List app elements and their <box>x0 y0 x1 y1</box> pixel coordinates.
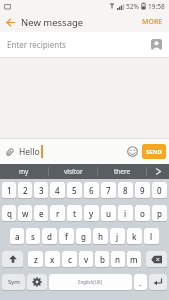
staticText: c <box>68 254 72 265</box>
button[interactable]: c <box>62 251 77 268</box>
staticText: 3 <box>39 185 44 196</box>
button[interactable]: 5 <box>67 182 82 199</box>
staticText: b <box>100 254 105 265</box>
staticText: i <box>124 208 127 219</box>
button[interactable] <box>5 147 15 157</box>
button[interactable]: d <box>42 228 57 245</box>
staticText: m <box>130 254 138 265</box>
staticText: SEND <box>146 148 162 156</box>
staticText: 7 <box>106 185 111 196</box>
button[interactable]: u <box>101 205 116 222</box>
staticText: g <box>81 231 86 242</box>
button[interactable]: f <box>59 228 74 245</box>
staticText: . <box>139 276 142 288</box>
staticText: o <box>140 208 145 219</box>
staticText: x <box>50 254 55 265</box>
button[interactable]: English(UK) <box>49 274 132 291</box>
button[interactable]: . <box>134 274 147 291</box>
staticText: 5 <box>72 185 77 196</box>
button[interactable]: 2 <box>18 182 32 199</box>
button[interactable]: visitor <box>49 164 97 179</box>
button[interactable]: n <box>111 251 125 268</box>
staticText: Hello <box>19 146 40 158</box>
button[interactable]: q <box>2 205 16 222</box>
staticText: 2 <box>23 185 28 196</box>
staticText: 19:58 <box>148 2 165 11</box>
button[interactable]: t <box>67 205 82 222</box>
button[interactable]: m <box>127 251 141 268</box>
button[interactable] <box>149 274 167 291</box>
button[interactable]: k <box>127 228 142 245</box>
staticText: 6 <box>89 185 94 196</box>
staticText: q <box>7 208 12 219</box>
button[interactable] <box>6 18 15 27</box>
button[interactable]: 6 <box>84 182 99 199</box>
button[interactable]: y <box>84 205 99 222</box>
staticText: Sym <box>8 278 20 286</box>
button[interactable]: h <box>93 228 108 245</box>
button[interactable] <box>147 164 169 179</box>
staticText: my <box>19 167 29 176</box>
staticText: 52% <box>126 2 139 11</box>
staticText: z <box>34 254 38 265</box>
button[interactable]: my <box>0 164 48 179</box>
staticText: d <box>47 231 52 242</box>
button[interactable]: there <box>98 164 146 179</box>
button[interactable]: 4 <box>50 182 65 199</box>
staticText: k <box>132 231 137 242</box>
button[interactable]: 0 <box>152 182 167 199</box>
button[interactable]: a <box>10 228 24 245</box>
staticText: there <box>114 167 131 176</box>
button[interactable]: j <box>110 228 125 245</box>
button[interactable]: i <box>118 205 133 222</box>
staticText: y <box>89 208 94 219</box>
staticText: f <box>65 231 68 242</box>
staticText: h <box>98 231 104 242</box>
button[interactable]: 8 <box>118 182 133 199</box>
staticText: 4 <box>55 185 60 196</box>
button[interactable] <box>2 251 23 268</box>
button[interactable]: 9 <box>135 182 150 199</box>
button[interactable]: b <box>95 251 109 268</box>
button[interactable]: x <box>45 251 60 268</box>
staticText: 9 <box>140 185 145 196</box>
staticText: l <box>150 231 153 242</box>
staticText: e <box>39 208 44 219</box>
button[interactable] <box>151 39 162 50</box>
button[interactable]: MORE <box>142 17 163 27</box>
staticText: a <box>15 231 20 242</box>
button[interactable]: p <box>152 205 167 222</box>
button[interactable] <box>27 274 47 291</box>
staticText: 8 <box>123 185 128 196</box>
staticText: r <box>56 208 60 219</box>
staticText: MORE <box>142 17 163 27</box>
button[interactable]: 3 <box>34 182 48 199</box>
button[interactable]: Enter recipients <box>7 32 162 57</box>
staticText: visitor <box>64 167 83 176</box>
button[interactable]: e <box>34 205 48 222</box>
button[interactable]: o <box>135 205 150 222</box>
button[interactable]: 7 <box>101 182 116 199</box>
button[interactable]: s <box>26 228 40 245</box>
button[interactable] <box>127 146 138 157</box>
button[interactable]: g <box>76 228 91 245</box>
staticText: w <box>22 208 29 219</box>
button[interactable]: r <box>50 205 65 222</box>
button[interactable]: z <box>28 251 43 268</box>
button[interactable]: 1 <box>2 182 16 199</box>
staticText: Enter recipients <box>7 39 66 50</box>
staticText: New message <box>21 16 84 29</box>
button[interactable]: v <box>79 251 93 268</box>
staticText: n <box>115 254 121 265</box>
staticText: 1 <box>7 185 12 196</box>
button[interactable]: l <box>144 228 159 245</box>
staticText: j <box>116 231 119 242</box>
button[interactable] <box>146 251 167 268</box>
button[interactable]: SEND <box>142 144 166 159</box>
staticText: p <box>157 208 162 219</box>
button[interactable]: w <box>18 205 32 222</box>
staticText: English(UK) <box>78 279 103 285</box>
button[interactable]: Sym <box>2 274 25 291</box>
staticText: u <box>106 208 112 219</box>
staticText: s <box>31 231 35 242</box>
